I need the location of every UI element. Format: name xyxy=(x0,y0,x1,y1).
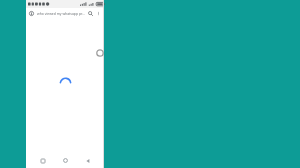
staticText: who viewed my whatsapp pr... xyxy=(37,11,85,16)
button[interactable]: who viewed my whatsapp pr... xyxy=(37,9,86,18)
button[interactable]: Search xyxy=(87,10,94,17)
button[interactable]: Back xyxy=(82,155,93,166)
other: Pointer xyxy=(96,49,104,57)
button[interactable]: Home xyxy=(60,155,71,166)
button[interactable]: More options xyxy=(95,10,102,17)
button[interactable]: Page info xyxy=(28,10,35,17)
button[interactable]: Recent apps xyxy=(37,155,48,166)
